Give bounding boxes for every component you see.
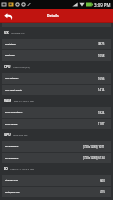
staticText: CPU float point: [5,89,23,92]
staticText: CPU [4,65,11,69]
staticText: 600 [100,179,105,183]
staticText: Multitask: [5,43,17,46]
button[interactable]: 3D graphics: [2,153,111,163]
staticText: 1414 [98,88,105,92]
staticText: 884.3 / 784.7 MB [14,99,34,102]
button[interactable]: CPU integer: [2,73,111,84]
staticText: [720x1280] 1071 [83,145,105,149]
staticText: Mali-400 MP [13,133,28,136]
staticText: Android 4.3 [11,31,25,34]
staticText: RAM Operation: [5,111,23,114]
staticText: 3875 [98,42,105,46]
staticText: IO [4,167,8,171]
staticText: 1824 [98,111,105,115]
staticText: Storage I/O: [5,179,19,182]
staticText: 1058 [98,54,105,58]
button[interactable]: Database I/O: [2,187,111,197]
staticText: 415 [100,190,105,194]
staticText: 1600 MHz (x4) [13,65,30,68]
staticText: CPU integer: [5,77,19,80]
staticText: 1656 [98,77,105,81]
staticText: 7388.9 / 11013.3 MB [10,167,34,170]
staticText: 3D graphics: [5,157,19,160]
staticText: [720x1280] 6134 [83,156,105,160]
staticText: Runtime: [5,54,15,57]
button[interactable]: RAM Operation: [2,107,111,118]
staticText: RAM [4,99,12,103]
staticText: GPU [4,133,11,137]
button[interactable]: 2D graphics: [2,141,111,152]
button[interactable]: CPU float point: [2,85,111,95]
button[interactable]: Multitask: [2,39,111,49]
staticText: 3:09 PM [94,2,111,8]
staticText: RAM Speed: [5,123,18,126]
staticText: 1187 [98,122,105,126]
button[interactable]: Runtime: [2,50,111,61]
button[interactable]: Storage I/O: [2,175,111,186]
staticText: Database I/O: [5,191,20,194]
staticText: Details [47,13,59,18]
staticText: 2D graphics: [5,145,19,148]
staticText: UX [4,31,9,35]
button[interactable]: RAM Speed: [2,119,111,129]
button[interactable]: Back [0,9,16,23]
